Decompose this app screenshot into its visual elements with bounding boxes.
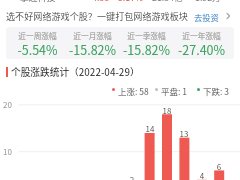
- staticText: 21.34亿: [152, 0, 183, 4]
- staticText: 选不好网络游戏个股？一键打包网络游戏板块: [6, 9, 188, 22]
- staticText: 10: [3, 146, 12, 158]
- button[interactable]: 选不好网络游戏个股？一键打包网络游戏板块: [0, 0, 240, 27]
- staticText: 14: [140, 123, 160, 135]
- staticText: 18: [157, 105, 177, 117]
- staticText: 4: [192, 170, 212, 180]
- staticText: 4.88 +3.17%: [92, 0, 144, 4]
- staticText: 300315: [52, 0, 78, 2]
- staticText: 近一周涨幅: [10, 30, 65, 41]
- staticText: -15.82%: [119, 40, 174, 58]
- staticText: -15.82%: [65, 40, 120, 58]
- staticText: 下跌: 3: [203, 85, 229, 97]
- button[interactable]: 去投资: [190, 4, 236, 23]
- button[interactable]: 近一月涨幅: [65, 28, 120, 56]
- staticText: 个股涨跌统计（2022-04-29）: [11, 65, 140, 79]
- staticText: 2: [122, 174, 142, 180]
- staticText: 20: [3, 99, 12, 111]
- button[interactable]: 近一年涨幅: [174, 28, 229, 56]
- button[interactable]: 近一季涨幅: [119, 28, 174, 56]
- staticText: 6: [209, 161, 229, 173]
- staticText: -5.54%: [10, 40, 65, 58]
- staticText: 近一季涨幅: [119, 30, 174, 41]
- staticText: 1.92万: [195, 0, 221, 4]
- staticText: 近一月涨幅: [65, 30, 120, 41]
- staticText: 掌趣科技: [20, 0, 56, 4]
- button[interactable]: 近一周涨幅: [10, 28, 65, 56]
- staticText: 上涨: 58: [118, 85, 149, 97]
- staticText: 近一年涨幅: [174, 30, 229, 41]
- staticText: -27.40%: [174, 40, 229, 58]
- staticText: 去投资: [194, 11, 219, 23]
- staticText: 13: [174, 128, 194, 140]
- staticText: 平盘: 1: [161, 85, 187, 97]
